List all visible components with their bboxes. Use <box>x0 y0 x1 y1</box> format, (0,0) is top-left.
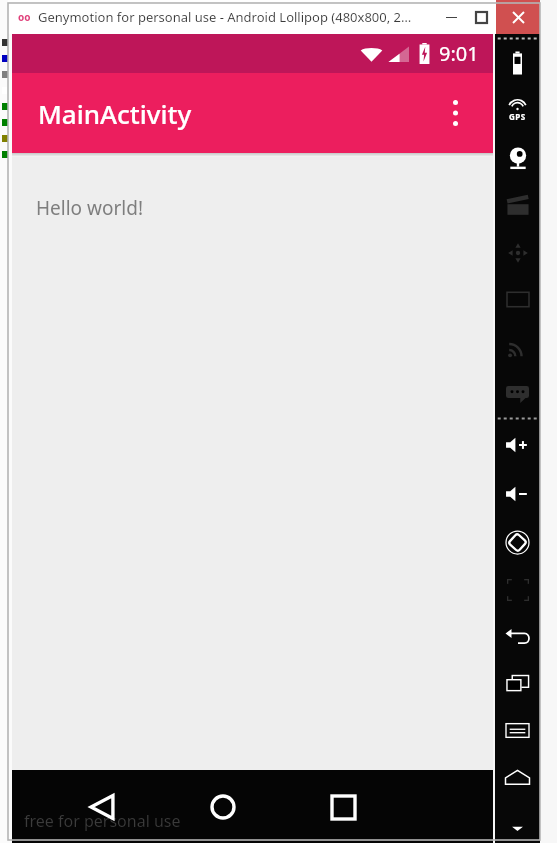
button[interactable]: Minimize <box>436 2 466 32</box>
button[interactable]: Back <box>71 776 133 838</box>
button[interactable]: Home <box>192 776 254 838</box>
button[interactable]: GPS <box>495 85 540 133</box>
staticText: Hello world! <box>36 195 144 221</box>
staticText: GPS <box>509 111 526 122</box>
button[interactable]: Recent apps <box>495 660 540 707</box>
button[interactable]: Rotate screen <box>495 518 540 566</box>
button[interactable]: Battery <box>495 40 540 85</box>
button[interactable]: More <box>495 817 540 839</box>
button[interactable]: Actual size <box>495 566 540 613</box>
button[interactable]: SMS <box>495 370 540 417</box>
button[interactable]: Baseband <box>495 323 540 370</box>
button[interactable]: Video capture <box>495 182 540 229</box>
button[interactable]: Close <box>496 0 540 34</box>
button[interactable]: Camera <box>495 133 540 182</box>
staticText: oo <box>18 10 31 24</box>
button[interactable]: Volume up <box>495 420 540 470</box>
button[interactable]: Menu <box>495 707 540 754</box>
button[interactable]: Home <box>495 754 540 801</box>
staticText: free for personal use <box>24 810 181 832</box>
button[interactable]: Maximize <box>466 2 496 32</box>
staticText: Genymotion for personal use - Android Lo… <box>38 8 436 26</box>
button[interactable]: Accelerometer <box>495 229 540 276</box>
button[interactable]: Back <box>495 613 540 660</box>
staticText: 9:01 <box>439 40 479 67</box>
button[interactable]: More options <box>431 89 479 137</box>
button[interactable]: Volume down <box>495 470 540 518</box>
button[interactable]: Identifiers <box>495 276 540 323</box>
staticText: MainActivity <box>38 96 192 131</box>
button[interactable]: Recent apps <box>312 776 374 838</box>
